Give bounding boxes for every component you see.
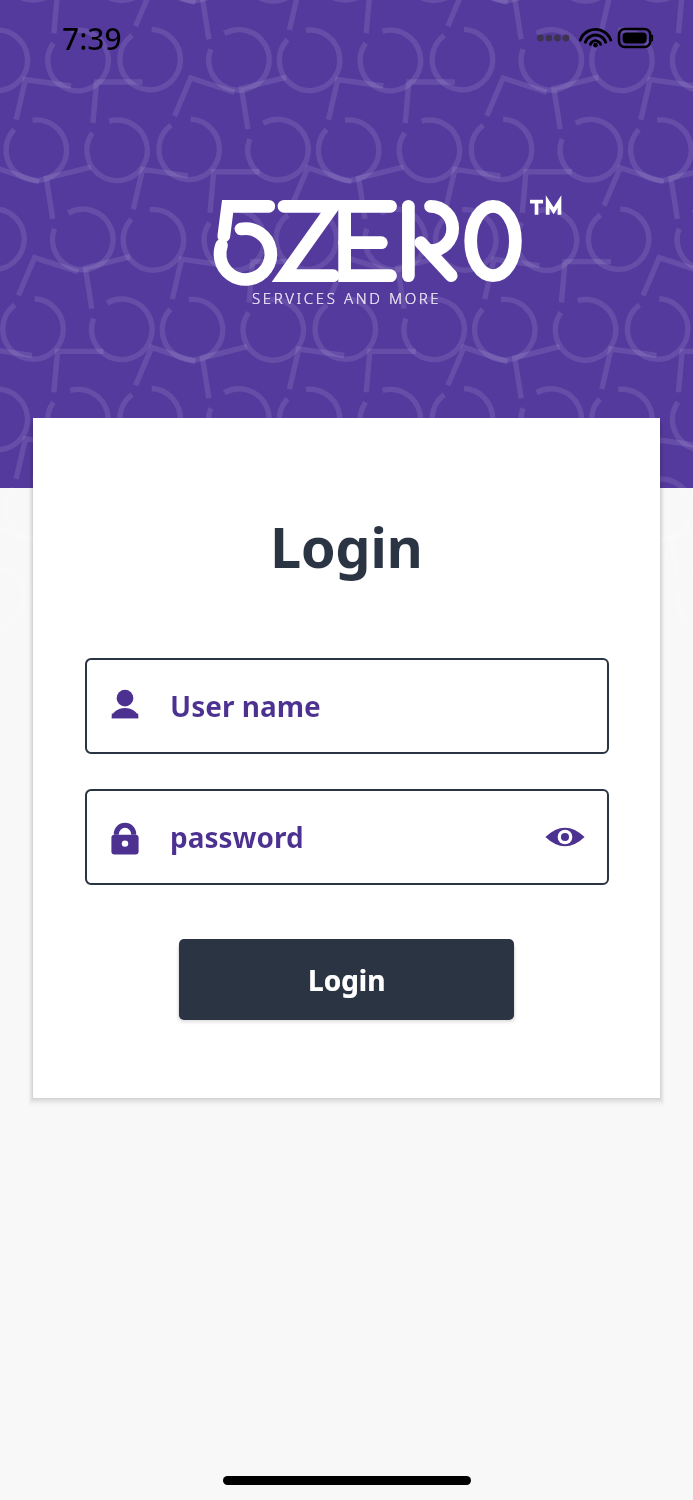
staticText: SERVICES AND MORE [252, 288, 442, 308]
staticText: User name [170, 687, 321, 725]
button[interactable]: Login [179, 939, 514, 1020]
staticText: Login [270, 508, 423, 584]
staticText: password [170, 818, 543, 856]
staticText: Login [308, 961, 386, 999]
button[interactable]: Show password [543, 819, 587, 855]
staticText: 7:39 [62, 18, 122, 59]
button[interactable]: password [85, 789, 609, 885]
button[interactable]: User name [85, 658, 609, 754]
